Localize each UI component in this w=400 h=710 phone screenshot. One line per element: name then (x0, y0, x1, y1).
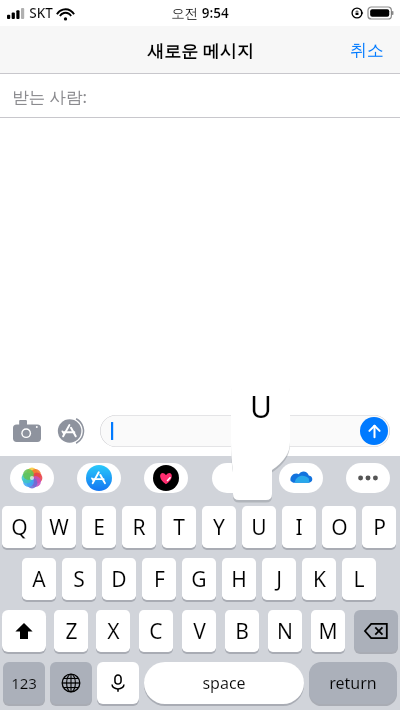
button[interactable]: N (268, 610, 302, 652)
staticText: F (154, 565, 165, 594)
button[interactable]: T (162, 506, 196, 548)
staticText: 받는 사람: (12, 85, 87, 108)
staticText: G (191, 565, 207, 594)
staticText: M (318, 617, 338, 646)
staticText: P (373, 513, 386, 542)
button[interactable]: X (96, 610, 130, 652)
staticText: C (149, 617, 163, 646)
staticText: 취소 (350, 40, 384, 61)
staticText: N (277, 617, 293, 646)
staticText: D (111, 565, 127, 594)
staticText: H (231, 565, 247, 594)
button[interactable]: Health (144, 463, 188, 493)
staticText: B (235, 617, 249, 646)
button[interactable]: A (22, 558, 56, 600)
staticText: Y (213, 513, 225, 542)
button[interactable]: App Store (54, 414, 88, 448)
button[interactable]: L (342, 558, 376, 600)
staticText: I (295, 513, 303, 542)
staticText: SKT (29, 4, 53, 22)
button[interactable]: P (362, 506, 396, 548)
staticText: J (276, 565, 282, 594)
button[interactable]: B (225, 610, 259, 652)
staticText: 123 (11, 673, 37, 693)
staticText: U (250, 386, 272, 426)
button[interactable]: D (102, 558, 136, 600)
button[interactable]: App Store (77, 463, 121, 493)
button[interactable]: E (82, 506, 116, 548)
button[interactable]: 123 (3, 662, 45, 704)
staticText: W (49, 513, 69, 542)
button[interactable]: U (242, 506, 276, 548)
button[interactable]: return (309, 662, 397, 704)
button[interactable]: Dictation (97, 662, 139, 704)
button[interactable]: Z (54, 610, 88, 652)
button[interactable]: 취소 (334, 30, 400, 71)
staticText: E (93, 513, 105, 542)
button[interactable]: Music (212, 463, 256, 493)
staticText: 오전 9:54 (171, 4, 229, 22)
button[interactable]: S (62, 558, 96, 600)
button[interactable]: Q (2, 506, 36, 548)
staticText: U (251, 513, 267, 542)
button[interactable]: I (282, 506, 316, 548)
button[interactable]: Backspace (354, 610, 398, 652)
button[interactable]: Send (100, 415, 390, 447)
staticText: T (173, 513, 185, 542)
button[interactable]: Camera (10, 414, 44, 448)
button[interactable]: M (311, 610, 345, 652)
staticText: space (202, 672, 246, 694)
staticText: S (73, 565, 85, 594)
staticText: 새로운 메시지 (147, 39, 254, 62)
staticText: A (32, 565, 46, 594)
staticText: O (331, 513, 348, 542)
button[interactable]: Switch keyboard (50, 662, 92, 704)
staticText: Q (11, 513, 28, 542)
button[interactable]: W (42, 506, 76, 548)
button[interactable]: J (262, 558, 296, 600)
button[interactable]: O (322, 506, 356, 548)
staticText: return (329, 672, 377, 694)
button[interactable]: G (182, 558, 216, 600)
button[interactable]: Send (360, 417, 388, 445)
button[interactable]: K (302, 558, 336, 600)
button[interactable]: Y (202, 506, 236, 548)
button[interactable]: F (142, 558, 176, 600)
button[interactable]: OneDrive (279, 463, 323, 493)
button[interactable]: Shift (2, 610, 46, 652)
button[interactable]: V (182, 610, 216, 652)
staticText: R (132, 513, 146, 542)
staticText: K (313, 565, 326, 594)
button[interactable]: 받는 사람: (0, 74, 400, 118)
staticText: L (353, 565, 365, 594)
button[interactable]: More (346, 463, 390, 493)
button[interactable]: Photos (10, 463, 54, 493)
button[interactable]: H (222, 558, 256, 600)
button[interactable]: C (139, 610, 173, 652)
staticText: V (193, 617, 206, 646)
staticText: X (107, 617, 120, 646)
staticText: Z (65, 617, 78, 646)
button[interactable]: space (144, 662, 304, 704)
button[interactable]: R (122, 506, 156, 548)
